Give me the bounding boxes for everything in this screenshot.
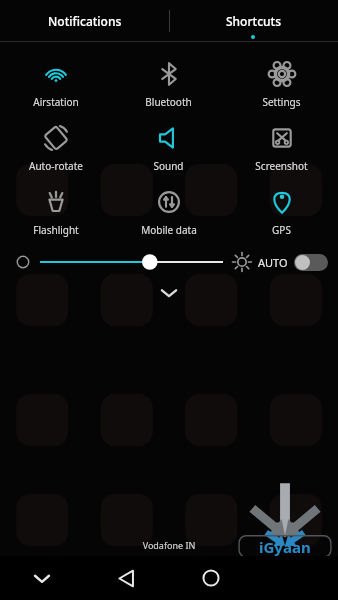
staticText: Flashlight bbox=[33, 223, 79, 237]
staticText: Airstation bbox=[33, 95, 79, 109]
button[interactable]: High brightness bbox=[231, 251, 253, 273]
button[interactable]: Shortcuts bbox=[169, 0, 338, 42]
button[interactable]: Auto-rotate bbox=[0, 120, 112, 176]
button[interactable] bbox=[40, 249, 223, 275]
button[interactable]: Low brightness bbox=[10, 249, 36, 275]
staticText: Sound bbox=[153, 159, 184, 173]
staticText: Auto-rotate bbox=[29, 159, 83, 173]
button[interactable]: Home bbox=[168, 556, 253, 600]
staticText: Settings bbox=[262, 95, 301, 109]
button[interactable]: Notifications bbox=[0, 0, 169, 42]
button[interactable]: Back bbox=[84, 556, 168, 600]
button[interactable]: AUTO bbox=[258, 254, 328, 271]
staticText: Shortcuts bbox=[226, 13, 281, 29]
button[interactable]: GPS bbox=[225, 184, 338, 240]
button[interactable]: Bluetooth bbox=[112, 56, 225, 112]
button[interactable]: Sound bbox=[112, 120, 225, 176]
button[interactable]: Expand quick settings bbox=[0, 280, 338, 306]
button[interactable]: Hide panel bbox=[0, 556, 84, 600]
staticText: Vodafone IN bbox=[0, 539, 338, 551]
staticText: Notifications bbox=[48, 13, 122, 29]
staticText: Mobile data bbox=[141, 223, 197, 237]
button[interactable]: Airstation bbox=[0, 56, 112, 112]
staticText: AUTO bbox=[258, 255, 288, 270]
button[interactable]: Screenshot bbox=[225, 120, 338, 176]
staticText: Bluetooth bbox=[145, 95, 192, 109]
button[interactable]: Flashlight bbox=[0, 184, 112, 240]
button[interactable]: Mobile data bbox=[112, 184, 225, 240]
staticText: Screenshot bbox=[255, 159, 308, 173]
button[interactable]: Settings bbox=[225, 56, 338, 112]
staticText: iGyaan bbox=[259, 537, 311, 557]
staticText: GPS bbox=[272, 223, 291, 237]
